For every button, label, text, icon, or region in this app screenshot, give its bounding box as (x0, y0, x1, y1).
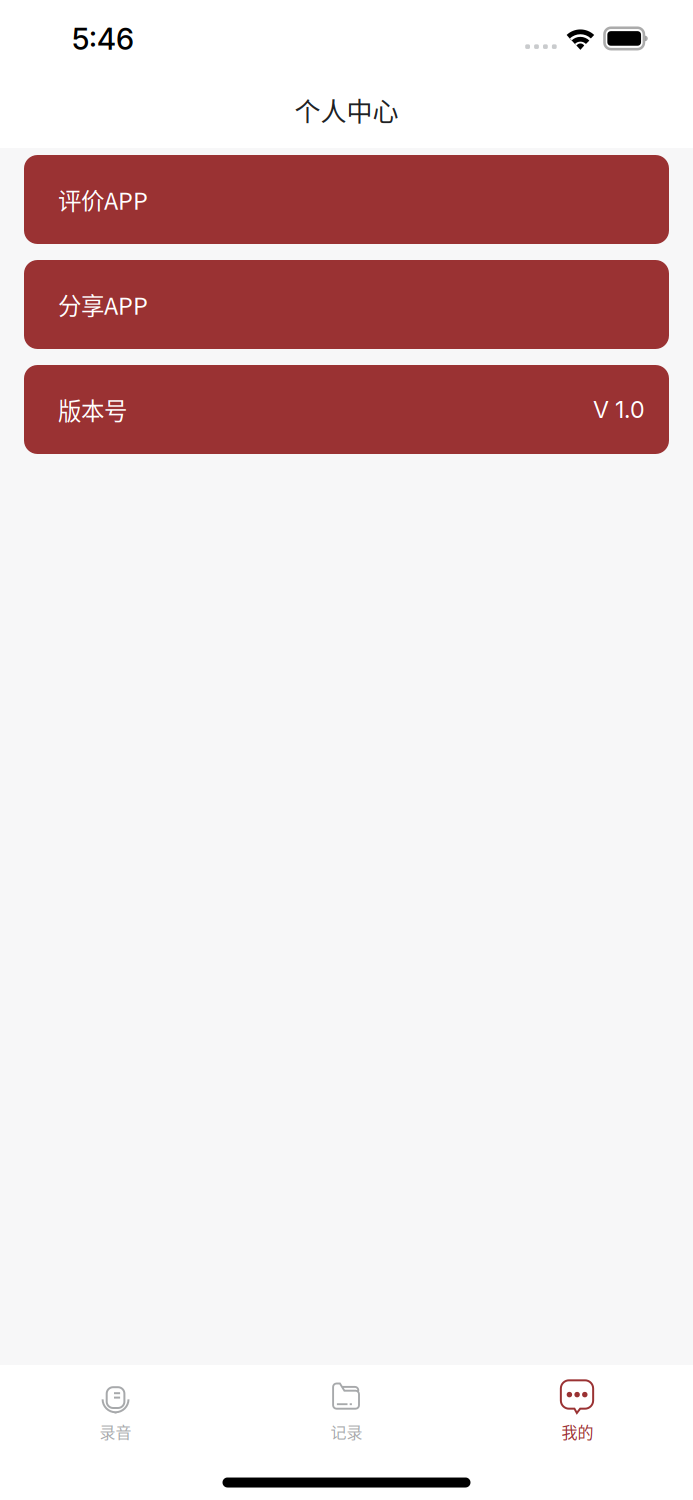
button[interactable]: 分享APP (24, 260, 669, 349)
staticText: V 1.0 (593, 395, 645, 424)
button[interactable]: 我的 (462, 1365, 693, 1465)
button[interactable]: 记录 (231, 1365, 462, 1465)
button[interactable]: 版本号 (24, 365, 669, 454)
staticText: 个人中心 (294, 91, 398, 129)
staticText: 记录 (330, 1420, 362, 1443)
staticText: 录音 (99, 1420, 131, 1443)
staticText: 我的 (561, 1420, 593, 1443)
button[interactable]: 录音 (0, 1365, 231, 1465)
staticText: 版本号 (58, 392, 127, 426)
staticText: 5:46 (72, 21, 134, 57)
staticText: 评价APP (58, 182, 148, 216)
staticText: 分享APP (58, 287, 148, 321)
button[interactable]: 评价APP (24, 155, 669, 244)
